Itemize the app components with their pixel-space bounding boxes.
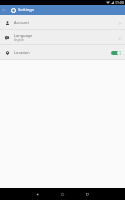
button[interactable]: Location [0,45,125,60]
button[interactable]: Home [54,188,71,200]
staticText: 11:00 [115,0,124,5]
button[interactable]: Location switch, on [111,51,121,55]
button[interactable]: Account [0,15,125,30]
staticText: Account [14,20,29,25]
button[interactable]: Back [29,188,46,200]
staticText: Settings [18,7,34,13]
button[interactable]: Recent apps [79,188,96,200]
staticText: Language [14,33,33,38]
staticText: English [14,38,24,42]
staticText: Location [14,50,30,55]
button[interactable]: Language [0,30,125,45]
button[interactable]: Navigate up [1,5,7,15]
